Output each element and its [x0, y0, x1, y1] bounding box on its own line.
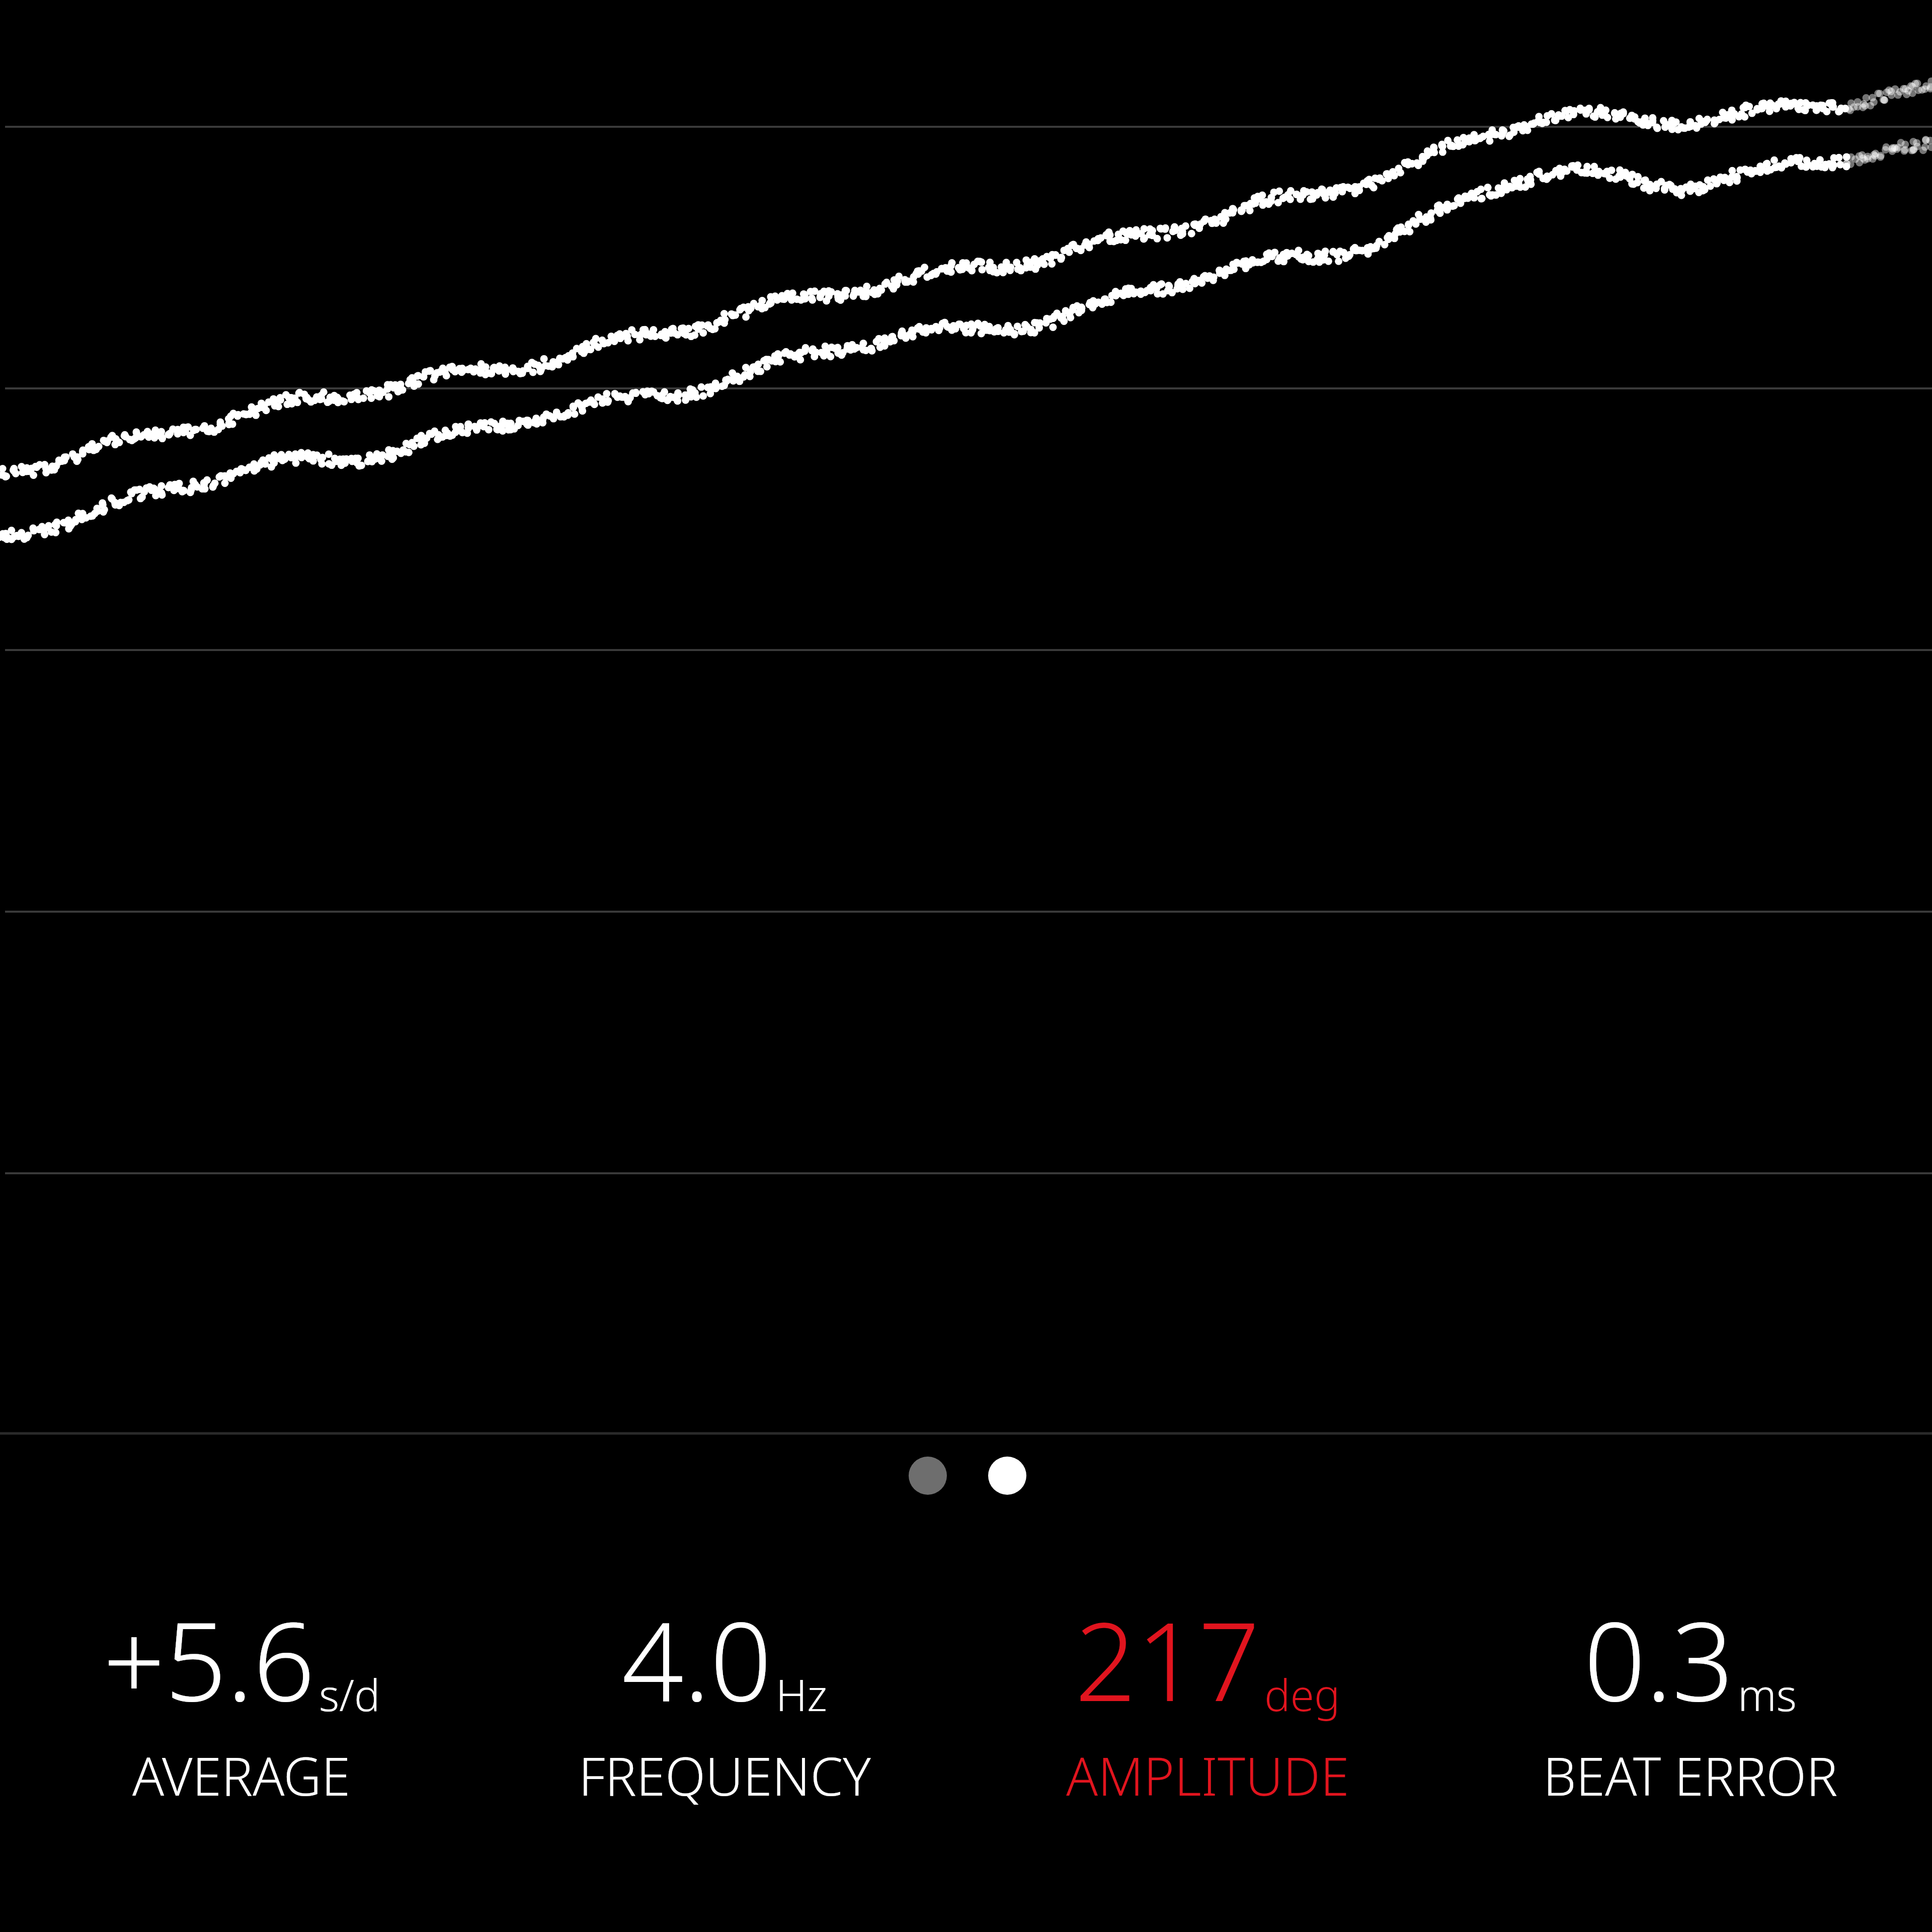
button[interactable]: 4.0: [483, 1585, 966, 1811]
staticText: ms: [1738, 1665, 1797, 1724]
staticText: 4.0: [622, 1585, 772, 1733]
staticText: AMPLITUDE: [1066, 1740, 1349, 1811]
button[interactable]: 217: [966, 1585, 1449, 1811]
staticText: Hz: [776, 1665, 827, 1724]
staticText: FREQUENCY: [579, 1740, 871, 1811]
staticText: BEAT ERROR: [1543, 1740, 1838, 1811]
staticText: AVERAGE: [132, 1740, 351, 1811]
staticText: 0.3: [1584, 1585, 1734, 1733]
button[interactable]: +5.6: [0, 1585, 483, 1811]
staticText: +5.6: [103, 1585, 315, 1733]
button[interactable]: Page indicator: [906, 1454, 1029, 1501]
button[interactable]: 0.3: [1449, 1585, 1932, 1811]
staticText: 217: [1075, 1585, 1260, 1733]
staticText: s/d: [319, 1665, 380, 1724]
staticText: deg: [1264, 1665, 1340, 1724]
